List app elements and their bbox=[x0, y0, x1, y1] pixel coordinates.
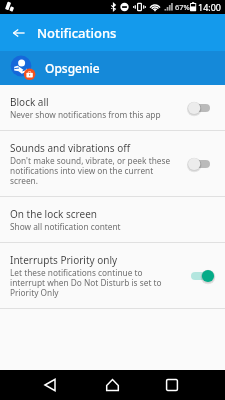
button[interactable] bbox=[189, 266, 219, 286]
button[interactable]: Interrupts Priority only bbox=[0, 243, 225, 308]
staticText: On the lock screen bbox=[10, 207, 97, 221]
staticText: Don't make sound, vibrate, or peek these… bbox=[10, 155, 174, 186]
staticText: Sounds and vibrations off bbox=[10, 141, 131, 155]
button[interactable]: Back bbox=[0, 370, 81, 400]
button[interactable]: Home bbox=[81, 370, 144, 400]
staticText: Notifications bbox=[37, 24, 117, 42]
button[interactable]: Recent apps bbox=[144, 370, 225, 400]
button[interactable]: Block all bbox=[0, 85, 225, 130]
staticText: 67% bbox=[175, 2, 190, 12]
staticText: Interrupts Priority only bbox=[10, 253, 118, 267]
button[interactable]: Sounds and vibrations off bbox=[0, 131, 225, 196]
staticText: 14:00 bbox=[198, 1, 222, 13]
staticText: Show all notification content bbox=[10, 221, 121, 232]
button[interactable] bbox=[189, 154, 219, 174]
staticText: Block all bbox=[10, 95, 49, 109]
staticText: Let these notifications continue to inte… bbox=[10, 267, 174, 298]
button[interactable] bbox=[189, 98, 219, 118]
button[interactable]: Opsgenie bbox=[0, 51, 225, 85]
staticText: Opsgenie bbox=[45, 60, 100, 76]
button[interactable]: On the lock screen bbox=[0, 197, 225, 242]
button[interactable]: Back bbox=[0, 14, 37, 51]
staticText: Never show notifications from this app bbox=[10, 109, 161, 120]
